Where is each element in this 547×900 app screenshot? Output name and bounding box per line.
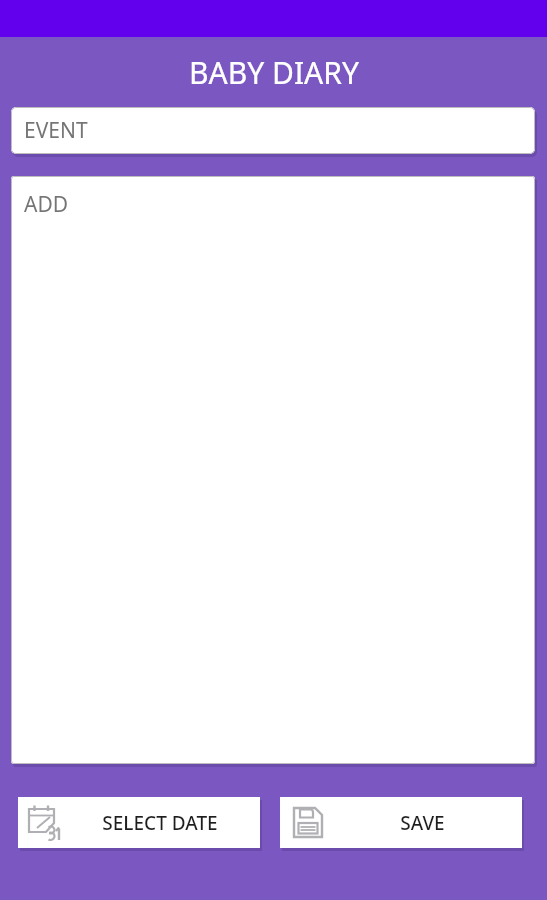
button[interactable]: EVENT — [11, 107, 535, 154]
other: Save — [289, 804, 327, 842]
button[interactable]: ADD — [11, 176, 535, 764]
staticText: EVENT — [24, 116, 88, 145]
staticText: BABY DIARY — [189, 52, 359, 93]
staticText: SELECT DATE — [102, 810, 218, 836]
other: Select date — [26, 803, 66, 843]
staticText: SAVE — [400, 810, 445, 836]
button[interactable]: Save — [280, 797, 522, 848]
staticText: ADD — [24, 190, 69, 219]
button[interactable]: Select date — [18, 797, 260, 848]
